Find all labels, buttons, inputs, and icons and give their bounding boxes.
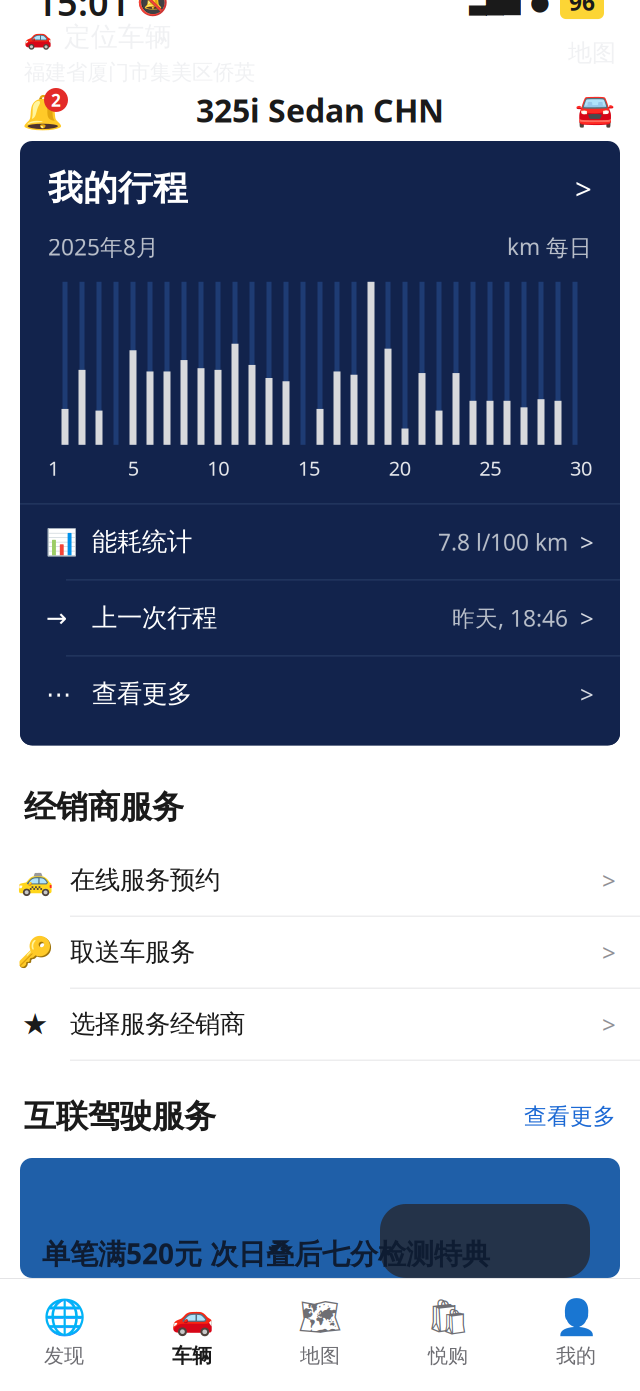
staticText: 🚗 [24, 24, 52, 50]
staticText: 🔕 [137, 0, 169, 16]
staticText: 🛍 [426, 1297, 470, 1337]
staticText: ▃▅▇ [469, 0, 520, 15]
staticText: 25 [479, 455, 501, 481]
staticText: 🔔 [22, 94, 64, 132]
staticText: 在线服务预约 [70, 865, 220, 896]
staticText: > [575, 169, 592, 208]
staticText: 5 [128, 455, 139, 481]
staticText: 2 [51, 88, 61, 111]
staticText: ⋯ [46, 679, 71, 708]
staticText: > [580, 678, 594, 710]
staticText: 福建省厦门市集美区侨英 [24, 59, 255, 85]
staticText: 🚘 [575, 92, 615, 128]
button[interactable]: ⋯ [20, 655, 620, 731]
staticText: ● [530, 0, 550, 15]
staticText: 96 [569, 0, 595, 17]
staticText: 查看更多 [92, 678, 192, 709]
staticText: 20 [389, 455, 411, 481]
staticText: 能耗统计 [92, 526, 192, 557]
staticText: 🚕 [16, 863, 53, 897]
staticText: 单笔满520元 次日叠后七分检测特典 [42, 1235, 490, 1272]
staticText: 查看更多 [524, 1102, 616, 1130]
staticText: > [602, 864, 616, 896]
button[interactable]: 📊 [20, 503, 620, 579]
staticText: → [46, 603, 67, 632]
staticText: 1 [48, 455, 59, 481]
button[interactable]: 通知 [18, 83, 72, 137]
staticText: 地图 [300, 1344, 340, 1368]
staticText: 上一次行程 [92, 602, 217, 633]
button[interactable]: 🗺 [256, 1289, 384, 1376]
button[interactable]: 👤 [512, 1289, 640, 1376]
staticText: 我的行程 [48, 167, 188, 210]
staticText: 2025年8月 [48, 232, 159, 262]
staticText: > [580, 602, 594, 634]
staticText: 👤 [554, 1297, 597, 1337]
button[interactable]: 我的行程 [20, 141, 620, 232]
staticText: km 每日 [507, 232, 592, 262]
button[interactable]: ★ [0, 988, 640, 1060]
staticText: 选择服务经销商 [70, 1009, 245, 1040]
staticText: 🗺 [298, 1297, 342, 1337]
staticText: 15 [298, 455, 320, 481]
button[interactable]: 🌐 [0, 1289, 128, 1376]
staticText: 互联驾驶服务 [24, 1097, 216, 1136]
button[interactable]: 🚕 [0, 845, 640, 916]
staticText: 我的 [556, 1344, 596, 1368]
staticText: 325i Sedan CHN [196, 89, 444, 131]
staticText: 🌐 [42, 1297, 85, 1337]
button[interactable]: 🛍 [384, 1289, 512, 1376]
button[interactable]: 单笔满520元 次日叠后七分检测特典 [0, 1158, 640, 1278]
staticText: 📊 [46, 527, 78, 556]
staticText: > [602, 1008, 616, 1040]
button[interactable]: 查看更多 [524, 1102, 616, 1130]
staticText: 10 [207, 455, 229, 481]
staticText: 🔑 [16, 935, 53, 969]
staticText: ★ [22, 1007, 48, 1041]
button[interactable]: 🚗 [128, 1289, 256, 1376]
staticText: 取送车服务 [70, 937, 195, 968]
staticText: 7.8 l/100 km [438, 527, 568, 557]
staticText: 昨天, 18:46 [452, 603, 568, 633]
staticText: 地图 [568, 38, 616, 68]
staticText: 🚗 [170, 1297, 213, 1337]
button[interactable]: → [20, 579, 620, 655]
staticText: 发现 [44, 1344, 84, 1368]
staticText: 15:01 [36, 0, 130, 26]
staticText: 悦购 [428, 1344, 468, 1368]
staticText: 车辆 [172, 1344, 212, 1368]
staticText: > [580, 526, 594, 558]
staticText: 30 [570, 455, 592, 481]
staticText: 经销商服务 [24, 787, 184, 827]
button[interactable]: 切换车辆 [568, 83, 622, 137]
staticText: > [602, 936, 616, 968]
button[interactable]: 🔑 [0, 916, 640, 988]
staticText: 定位车辆 [64, 20, 172, 53]
